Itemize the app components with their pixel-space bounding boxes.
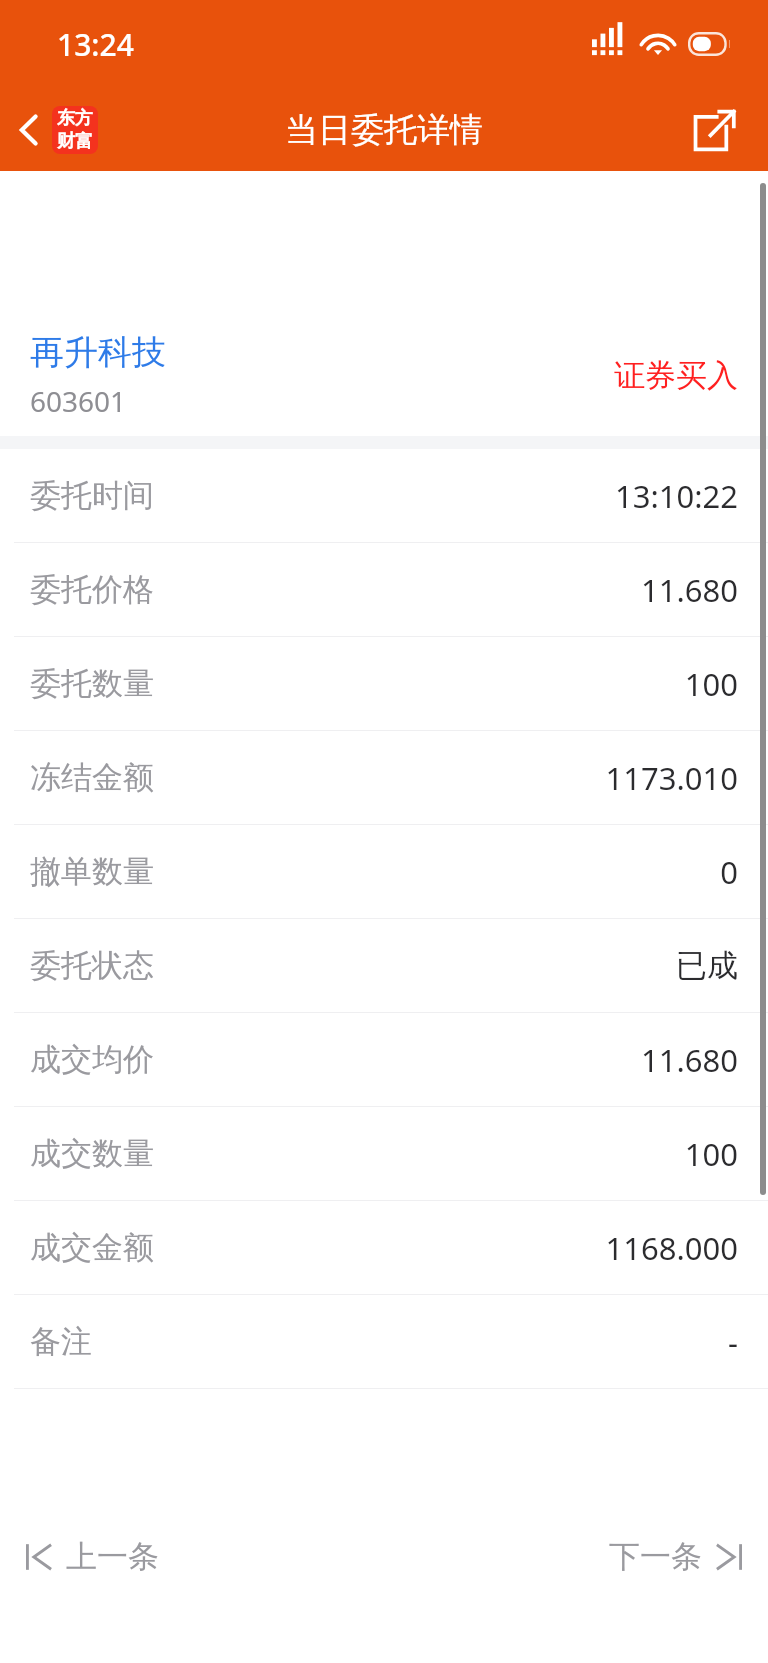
button[interactable]: 上一条 xyxy=(0,1525,179,1588)
staticText: 冻结金额 xyxy=(30,758,605,797)
button[interactable]: 备注 xyxy=(0,1295,768,1388)
staticText: 603601 xyxy=(30,382,127,420)
button[interactable]: 委托数量 xyxy=(0,637,768,730)
staticText: 委托价格 xyxy=(30,570,641,609)
staticText: 成交均价 xyxy=(30,1040,641,1079)
button[interactable]: 成交金额 xyxy=(0,1201,768,1294)
button[interactable]: 下一条 xyxy=(589,1525,768,1588)
staticText: 1173.010 xyxy=(605,757,738,799)
staticText: 已成 xyxy=(676,946,738,985)
staticText: 1168.000 xyxy=(605,1227,738,1269)
staticText: 委托状态 xyxy=(30,946,676,985)
button[interactable]: 委托时间 xyxy=(0,449,768,542)
staticText: 100 xyxy=(684,663,738,705)
staticText: 下一条 xyxy=(609,1537,702,1576)
staticText: 11.680 xyxy=(641,569,738,611)
button[interactable]: Back xyxy=(0,98,106,162)
staticText: 证券买入 xyxy=(614,356,738,395)
button[interactable]: Share xyxy=(680,98,768,162)
button[interactable]: 委托价格 xyxy=(0,543,768,636)
button[interactable]: 撤单数量 xyxy=(0,825,768,918)
staticText: 再升科技 xyxy=(30,331,166,374)
button[interactable]: 成交数量 xyxy=(0,1107,768,1200)
button[interactable]: 成交均价 xyxy=(0,1013,768,1106)
staticText: 财富 xyxy=(57,130,93,153)
staticText: 11.680 xyxy=(641,1039,738,1081)
staticText: 上一条 xyxy=(66,1537,159,1576)
button[interactable]: 委托状态 xyxy=(0,919,768,1012)
staticText: 0 xyxy=(720,851,738,893)
button[interactable]: 冻结金额 xyxy=(0,731,768,824)
staticText: 撤单数量 xyxy=(30,852,720,891)
staticText: 委托数量 xyxy=(30,664,684,703)
staticText: - xyxy=(728,1321,738,1363)
staticText: 100 xyxy=(684,1133,738,1175)
staticText: 备注 xyxy=(30,1322,728,1361)
staticText: 委托时间 xyxy=(30,476,614,515)
staticText: 13:10:22 xyxy=(614,475,738,517)
staticText: 当日委托详情 xyxy=(285,109,483,151)
staticText: 13:24 xyxy=(57,24,134,65)
staticText: 成交数量 xyxy=(30,1134,684,1173)
staticText: 成交金额 xyxy=(30,1228,605,1267)
staticText: 东方 xyxy=(57,107,93,130)
